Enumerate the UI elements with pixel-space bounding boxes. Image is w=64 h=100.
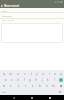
staticText: k [47, 78, 49, 82]
button[interactable]: s [9, 77, 15, 83]
staticText: c [25, 84, 27, 88]
staticText: a [5, 78, 7, 82]
button[interactable]: b [36, 83, 43, 89]
button[interactable]: Home [28, 95, 36, 100]
button[interactable]: Enter [57, 77, 64, 83]
staticText: j [42, 78, 43, 82]
staticText: . [53, 91, 54, 94]
button[interactable]: m [50, 83, 57, 89]
staticText: i [49, 72, 50, 76]
staticText: Tue, 12 May [2, 19, 14, 22]
staticText: m [52, 84, 55, 88]
staticText: r [24, 72, 26, 76]
button[interactable]: Backspace [57, 83, 64, 89]
button[interactable]: Back [0, 3, 4, 8]
button[interactable]: l [51, 77, 57, 83]
staticText: u [42, 72, 44, 76]
button[interactable]: f [21, 77, 27, 83]
staticText: b [39, 84, 41, 88]
staticText: z [10, 84, 12, 88]
button[interactable]: t [28, 71, 34, 77]
button[interactable]: j [39, 77, 45, 83]
button[interactable]: n [43, 83, 50, 89]
staticText: y [36, 72, 38, 76]
button[interactable]: Back [10, 95, 18, 100]
staticText: s [11, 78, 13, 82]
button[interactable]: u [40, 71, 46, 77]
button[interactable]: Emoji [56, 89, 64, 95]
button[interactable]: Location [0, 13, 64, 18]
button[interactable]: k [45, 77, 51, 83]
button[interactable]: Shift [0, 83, 7, 89]
button[interactable]: ?123 [0, 89, 8, 95]
staticText: t [31, 72, 32, 76]
staticText: x [18, 84, 20, 88]
button[interactable]: r [21, 71, 28, 77]
button[interactable]: x [15, 83, 22, 89]
staticText: n [46, 84, 48, 88]
button[interactable]: y [34, 71, 40, 77]
staticText: v [32, 84, 34, 88]
button[interactable]: h [33, 77, 39, 83]
button[interactable]: w [7, 71, 14, 77]
button[interactable]: q [0, 71, 7, 77]
staticText: o [54, 72, 56, 76]
staticText: d [17, 78, 19, 82]
staticText: q [3, 72, 5, 76]
button[interactable]: c [22, 83, 29, 89]
button[interactable]: z [7, 83, 15, 89]
button[interactable]: p [58, 71, 64, 77]
button[interactable]: Recents [46, 95, 54, 100]
staticText: e [17, 72, 19, 76]
staticText: p [60, 72, 62, 76]
button[interactable]: i [46, 71, 52, 77]
staticText: l [54, 78, 55, 82]
button[interactable]: d [15, 77, 21, 83]
staticText: Title [2, 9, 7, 12]
button[interactable]: o [52, 71, 58, 77]
button[interactable]: Title [2, 8, 64, 12]
button[interactable]: a [2, 77, 9, 83]
staticText: f [24, 78, 25, 82]
staticText: New event [4, 4, 20, 8]
button[interactable]: e [14, 71, 21, 77]
staticText: ?123 [2, 91, 7, 94]
staticText: Location [2, 14, 12, 17]
staticText: g [29, 78, 31, 82]
staticText: h [35, 78, 37, 82]
button[interactable]: g [27, 77, 33, 83]
button[interactable]: v [29, 83, 36, 89]
button[interactable] [1, 23, 63, 43]
staticText: w [9, 72, 12, 76]
